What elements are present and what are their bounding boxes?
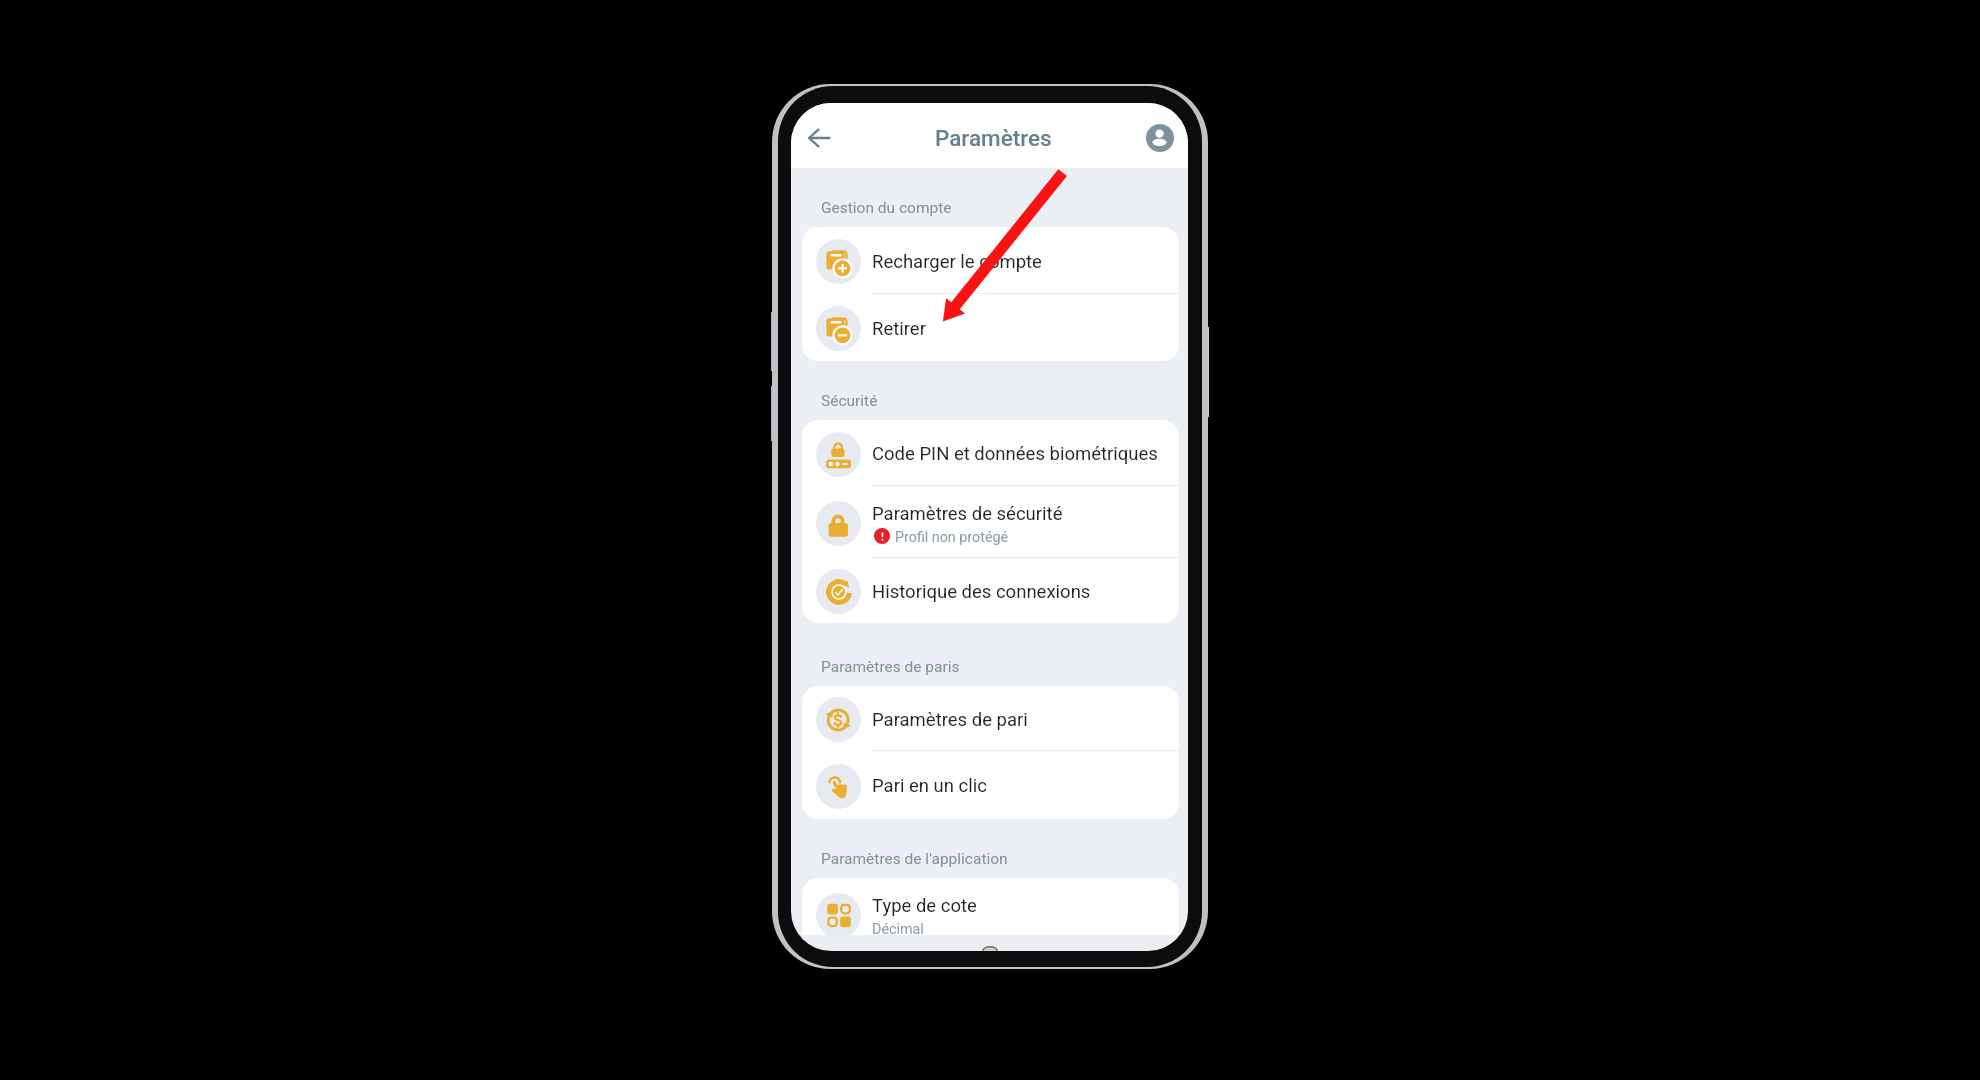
staticText: Paramètres de pari bbox=[872, 709, 1028, 731]
button[interactable]: Paramètres de pari bbox=[802, 686, 1179, 751]
staticText: Paramètres bbox=[935, 125, 1052, 151]
staticText: Recharger le compte bbox=[872, 251, 1042, 273]
staticText: Code PIN et données biométriques bbox=[872, 443, 1158, 465]
staticText: Profil non protégé bbox=[895, 529, 1009, 546]
button[interactable]: Code PIN et données biométriques bbox=[802, 420, 1179, 486]
button[interactable]: Back bbox=[797, 116, 841, 160]
staticText: Pari en un clic bbox=[872, 775, 987, 797]
button[interactable]: Historique des connexions bbox=[802, 558, 1179, 623]
staticText: Sécurité bbox=[821, 392, 878, 410]
button[interactable]: Type de cote bbox=[802, 878, 1179, 935]
staticText: Paramètres de paris bbox=[821, 658, 960, 676]
button[interactable]: Profile bbox=[1146, 124, 1174, 152]
staticText: Gestion du compte bbox=[821, 199, 952, 217]
staticText: Paramètres de l'application bbox=[821, 850, 1008, 868]
staticText: Paramètres de sécurité bbox=[872, 503, 1063, 525]
staticText: Type de cote bbox=[872, 895, 977, 917]
button[interactable]: Pari en un clic bbox=[802, 751, 1179, 819]
staticText: Historique des connexions bbox=[872, 581, 1091, 603]
button[interactable]: Retirer bbox=[802, 294, 1179, 361]
button[interactable]: Recharger le compte bbox=[802, 227, 1179, 294]
button[interactable]: Paramètres de sécurité bbox=[802, 486, 1179, 558]
staticText: Retirer bbox=[872, 318, 926, 340]
staticText: Décimal bbox=[872, 921, 924, 935]
